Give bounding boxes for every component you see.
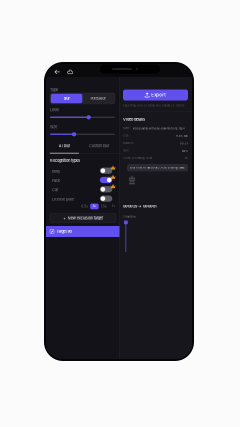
button[interactable]: Car <box>100 186 112 192</box>
button[interactable]: Target #0 <box>46 226 119 237</box>
staticText: Type <box>50 87 58 92</box>
staticText: Custom blur <box>89 144 109 148</box>
staticText: MP4 <box>182 149 188 153</box>
staticText: kids-playing-with-ball-slow-motion2.mp4 <box>133 127 185 130</box>
button[interactable]: 0.5x <box>81 203 89 209</box>
staticText: 11.85 MB <box>176 134 188 138</box>
staticText: Exporting a 00:21 video will deduct 22 c… <box>123 104 185 107</box>
staticText: Duration <box>123 141 133 145</box>
staticText: Video details <box>123 117 145 122</box>
staticText: Face <box>52 178 60 183</box>
button[interactable]: Pixelation <box>83 94 114 103</box>
button[interactable]: + <box>50 213 116 223</box>
staticText: Blur <box>63 96 69 101</box>
staticText: 12 <box>185 157 188 160</box>
button[interactable]: Body <box>100 168 112 174</box>
staticText: 00:00:29 → 00:00:81 <box>123 204 157 208</box>
button[interactable]: 2x <box>109 203 118 209</box>
staticText: Pixelation <box>90 96 106 101</box>
staticText: Name <box>123 126 129 130</box>
staticText: Blur filter AI has done 2,438 blurring t… <box>130 166 185 169</box>
staticText: Size <box>50 124 57 129</box>
staticText: New exclusion target <box>68 216 103 220</box>
button[interactable]: Cloud sync <box>67 69 73 74</box>
button[interactable]: Export <box>123 89 188 100</box>
staticText: Level <box>50 107 59 112</box>
staticText: 1.5x <box>101 205 107 208</box>
staticText: License plate <box>52 197 74 201</box>
staticText: 00:21 <box>180 142 188 145</box>
staticText: Target #0 <box>56 229 71 234</box>
button[interactable]: License plate <box>100 195 112 202</box>
staticText: AI blur <box>59 144 70 148</box>
staticText: Size <box>123 134 128 137</box>
staticText: Timeline <box>123 215 136 218</box>
staticText: 2x <box>112 205 116 208</box>
staticText: Car <box>52 188 58 192</box>
button[interactable]: Back <box>54 70 60 74</box>
button[interactable]: 1.5x <box>100 203 108 209</box>
button[interactable]: Face <box>100 177 112 183</box>
staticText: Export <box>151 92 166 98</box>
button[interactable]: Custom blur <box>79 143 119 154</box>
staticText: Type <box>123 149 128 152</box>
staticText: Recognition types <box>50 158 80 163</box>
staticText: + <box>63 215 66 221</box>
staticText: 1x <box>93 205 96 208</box>
button[interactable]: 1x <box>90 203 99 209</box>
button[interactable]: Blur <box>51 94 82 103</box>
staticText: 0.5x <box>81 205 88 208</box>
button[interactable]: AI blur <box>50 143 79 154</box>
staticText: Video processing count <box>123 156 152 160</box>
staticText: Body <box>52 169 60 173</box>
